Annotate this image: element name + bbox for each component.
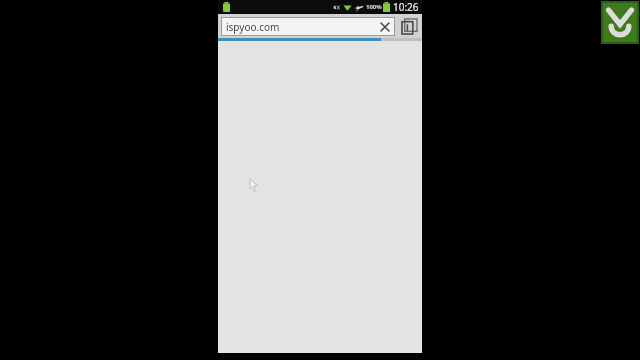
button[interactable]: Tabs [399,16,419,36]
staticText: 100% [366,3,382,11]
button[interactable]: Stop loading [377,19,393,35]
staticText: ispyoo.com [226,20,377,34]
staticText: 10:26 [393,0,419,14]
button[interactable]: ispyoo.com [221,17,395,36]
button[interactable]: Downloader [603,3,637,42]
